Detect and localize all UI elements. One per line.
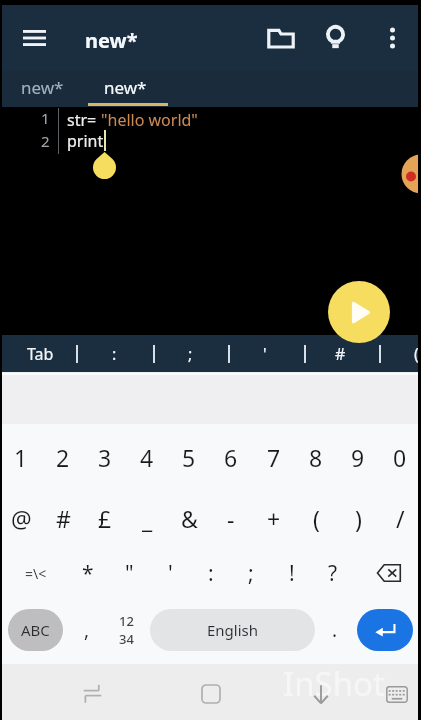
button[interactable]: 8 [295,429,337,485]
staticText: new* [21,76,64,99]
button[interactable]: ' [148,545,192,601]
button[interactable]: Enter [357,609,413,651]
button[interactable]: Backspace [364,545,414,601]
staticText: 1 [41,108,50,128]
staticText: new* [85,27,138,54]
staticText: 4 [140,442,154,473]
staticText: " [125,559,134,588]
button[interactable]: # [310,335,370,372]
staticText: / [396,503,405,534]
button[interactable]: ( [295,490,337,546]
staticText: 2 [41,131,50,151]
staticText: 12 [119,612,134,630]
staticText: print [67,130,104,152]
button[interactable]: " [107,545,151,601]
button[interactable]: . [318,609,352,651]
staticText: English [207,620,259,640]
button[interactable]: 4 [126,429,168,485]
staticText: 2 [56,442,70,473]
button[interactable]: Open file [256,13,306,63]
button[interactable]: 2 [42,429,84,485]
staticText: ( [414,343,419,365]
staticText: + [267,503,281,534]
staticText: 34 [119,630,134,648]
staticText: ABC [21,620,50,640]
staticText: # [335,343,346,365]
button[interactable]: - [210,490,252,546]
button[interactable]: 0 [379,429,421,485]
button[interactable]: # [42,490,84,546]
button[interactable]: 5 [168,429,210,485]
staticText: =\< [25,564,47,583]
staticText: ) [355,503,362,534]
staticText: ; [188,343,193,365]
button[interactable]: 1 [0,429,42,485]
button[interactable]: Switch to numbers [106,609,146,651]
button[interactable]: new* [85,71,165,104]
staticText: 9 [351,442,365,473]
button[interactable]: 9 [337,429,379,485]
button[interactable]: More options [371,13,413,63]
staticText: ' [263,343,267,365]
staticText: £ [98,503,112,534]
staticText: 6 [224,442,238,473]
staticText: # [56,503,71,534]
button[interactable]: ? [311,545,355,601]
button[interactable]: ) [337,490,379,546]
staticText: Tab [27,343,54,365]
button[interactable]: English [150,609,315,651]
staticText: 7 [267,442,281,473]
button[interactable]: Tips [311,13,359,63]
button[interactable]: ; [229,545,273,601]
staticText: 8 [309,442,323,473]
staticText: 3 [98,442,112,473]
staticText: ! [289,559,295,588]
staticText: : [112,343,117,365]
staticText: 0 [393,442,407,473]
staticText: - [227,503,235,534]
button[interactable]: Back [62,672,122,716]
button[interactable]: @ [0,490,42,546]
button[interactable]: : [189,545,233,601]
button[interactable]: Run [328,281,390,343]
staticText: . [332,617,338,643]
button[interactable]: new* [2,71,82,104]
button[interactable]: & [168,490,210,546]
button[interactable]: Change keyboard [374,672,420,716]
staticText: ( [313,503,320,534]
staticText: * [82,559,94,588]
staticText: InShot [283,661,385,706]
button[interactable]: , [68,609,106,651]
button[interactable]: Menu [8,13,60,63]
button[interactable]: + [253,490,295,546]
button[interactable]: ; [160,335,220,372]
staticText: ; [248,559,254,588]
button[interactable]: 7 [253,429,295,485]
button[interactable]: 6 [210,429,252,485]
staticText: ? [328,559,338,588]
button[interactable]: Hide keyboard [296,672,346,716]
button[interactable]: £ [84,490,126,546]
staticText: : [208,559,214,588]
staticText: _ [142,503,153,534]
staticText: 5 [182,442,196,473]
button[interactable]: Tab [10,335,70,372]
button[interactable]: ' [235,335,295,372]
button[interactable]: * [66,545,110,601]
staticText: @ [11,503,32,534]
button[interactable]: =\< [14,545,58,601]
staticText: new* [104,76,147,99]
button[interactable]: / [379,490,421,546]
staticText: str= [67,109,101,131]
staticText: & [181,503,198,534]
staticText: , [84,617,90,643]
button[interactable]: 3 [84,429,126,485]
button[interactable]: ABC [8,609,63,651]
button[interactable]: _ [126,490,168,546]
button[interactable]: : [84,335,144,372]
staticText: "hello world" [101,109,198,131]
button[interactable]: ( [386,335,421,372]
button[interactable]: ! [270,545,314,601]
staticText: 1 [14,442,28,473]
button[interactable]: Recents [181,672,241,716]
